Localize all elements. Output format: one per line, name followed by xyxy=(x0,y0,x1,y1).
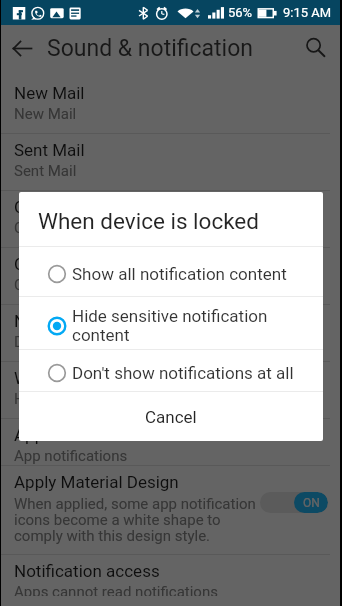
staticText: Notification sound xyxy=(14,311,153,331)
staticText: Apps cannot read notifications xyxy=(14,583,218,596)
button[interactable]: Notification access xyxy=(0,555,342,606)
button[interactable]: Apply Material Design xyxy=(0,466,342,554)
staticText: Show all notification content xyxy=(72,264,287,284)
staticText: Call xyxy=(14,254,43,274)
staticText: Notification access xyxy=(14,561,160,581)
button[interactable]: Show all notification content xyxy=(19,247,323,296)
button[interactable]: Search xyxy=(293,25,339,71)
staticText: New Mail xyxy=(14,83,85,103)
button[interactable]: Sent Mail xyxy=(0,134,342,190)
staticText: 9:15 AM xyxy=(283,5,332,20)
staticText: New Mail xyxy=(14,105,77,123)
button[interactable]: Call xyxy=(0,248,342,304)
staticText: When device is locked xyxy=(38,208,259,234)
button[interactable]: Don't show notifications at all xyxy=(19,350,323,391)
staticText: Sent Mail xyxy=(14,140,85,160)
staticText: Sent Mail xyxy=(14,162,77,180)
button[interactable]: App notifications xyxy=(0,419,342,465)
button[interactable]: Hide sensitive notification content xyxy=(19,297,323,349)
staticText: Default notification sound xyxy=(14,333,186,351)
staticText: 56% xyxy=(228,5,253,20)
staticText: Hide sensitive notification content xyxy=(14,390,241,408)
button[interactable]: Calendar xyxy=(0,191,342,247)
staticText: Calendar xyxy=(14,197,82,217)
button[interactable]: Navigate up xyxy=(0,26,44,70)
staticText: Apply Material Design xyxy=(14,472,179,492)
button[interactable]: New Mail xyxy=(0,79,342,133)
staticText: ON xyxy=(303,496,320,510)
staticText: Calendar xyxy=(14,219,74,237)
staticText: Call xyxy=(14,276,40,294)
staticText: App notifications xyxy=(14,425,143,445)
staticText: When applied, some app notification icon… xyxy=(14,495,258,544)
staticText: App notifications xyxy=(14,447,128,465)
staticText: Cancel xyxy=(145,407,197,427)
staticText: When device is locked xyxy=(14,368,181,388)
button[interactable]: Notification sound xyxy=(0,305,342,361)
button[interactable]: Cancel xyxy=(19,392,323,441)
staticText: Sound & notification xyxy=(47,35,254,62)
staticText: Don't show notifications at all xyxy=(72,363,294,383)
button[interactable]: Apply Material Design toggle xyxy=(260,492,328,513)
button[interactable]: When device is locked xyxy=(0,362,342,418)
staticText: Hide sensitive notification content xyxy=(72,306,309,345)
